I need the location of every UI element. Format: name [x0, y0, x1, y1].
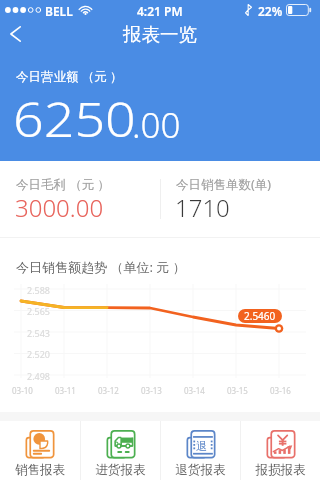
button[interactable]: 今日毛利 （元 ）	[0, 161, 160, 237]
staticText: 今日营业额 （元 ）	[16, 68, 123, 85]
staticText: 今日毛利 （元 ）	[16, 176, 111, 193]
staticText: 进货报表	[81, 462, 160, 478]
staticText: 2.565	[27, 305, 51, 317]
staticText: 03-12	[98, 385, 119, 396]
button[interactable]: 退	[161, 421, 240, 480]
staticText: 1710	[175, 191, 230, 224]
staticText: 22%	[258, 3, 283, 19]
staticText: 03-13	[141, 385, 162, 396]
staticText: 03-15	[227, 385, 248, 396]
staticText: 退货报表	[161, 462, 240, 478]
staticText: 报损报表	[241, 462, 320, 478]
staticText: 2.520	[27, 348, 51, 360]
staticText: 2.588	[27, 284, 51, 296]
button[interactable]: Back	[0, 13, 31, 55]
staticText: 6250	[13, 86, 136, 151]
staticText: 2.5460	[244, 309, 276, 323]
staticText: .00	[132, 101, 181, 149]
staticText: 报表一览	[0, 23, 320, 46]
staticText: 3000.00	[15, 191, 104, 224]
staticText: 2.543	[27, 327, 51, 339]
staticText: 03-11	[55, 385, 76, 396]
staticText: 2.498	[27, 370, 51, 382]
button[interactable]: 进货报表	[81, 421, 160, 480]
staticText: 销售报表	[0, 462, 80, 478]
staticText: 03-10	[12, 385, 33, 396]
staticText: 今日销售额趋势 （单位: 元 ）	[16, 258, 186, 276]
staticText: 03-14	[184, 385, 205, 396]
staticText: 退	[196, 439, 207, 453]
button[interactable]: 报损报表	[241, 421, 320, 480]
staticText: 今日销售单数(单)	[176, 176, 272, 193]
button[interactable]: 销售报表	[0, 421, 80, 480]
staticText: BELL	[45, 3, 73, 19]
button[interactable]: 今日销售单数(单)	[160, 161, 320, 237]
staticText: 4:21 PM	[137, 3, 183, 19]
staticText: 03-16	[270, 385, 291, 396]
